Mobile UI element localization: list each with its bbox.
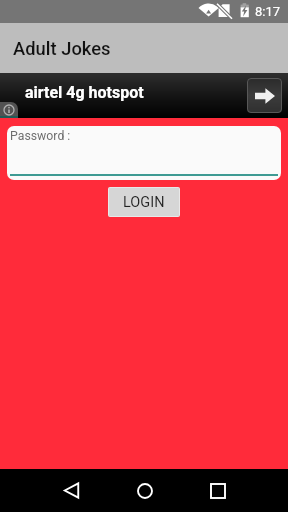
button[interactable]: LOGIN [109, 188, 179, 216]
button[interactable]: Home [108, 469, 181, 512]
button[interactable]: Open advertisement [247, 78, 282, 113]
staticText: Adult Jokes [13, 38, 111, 60]
staticText: Password : [10, 129, 71, 143]
button[interactable]: Recent apps [181, 469, 254, 512]
staticText: LOGIN [123, 194, 165, 211]
button[interactable]: Ad choices info [0, 102, 18, 118]
button[interactable]: airtel 4g hotspot [0, 73, 288, 118]
button[interactable]: Back [35, 469, 108, 512]
staticText: airtel 4g hotspot [25, 83, 144, 102]
button[interactable]: Password : [7, 126, 281, 180]
staticText: 8:17 [255, 4, 281, 19]
